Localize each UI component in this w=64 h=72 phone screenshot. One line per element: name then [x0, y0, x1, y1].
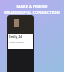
staticText: Emily, 24 [9, 35, 23, 39]
staticText: Loves hiking [9, 40, 24, 43]
staticText: MAKE A FRIEND [16, 4, 48, 9]
staticText: MEANINGFUL CONNECTION [4, 10, 60, 15]
